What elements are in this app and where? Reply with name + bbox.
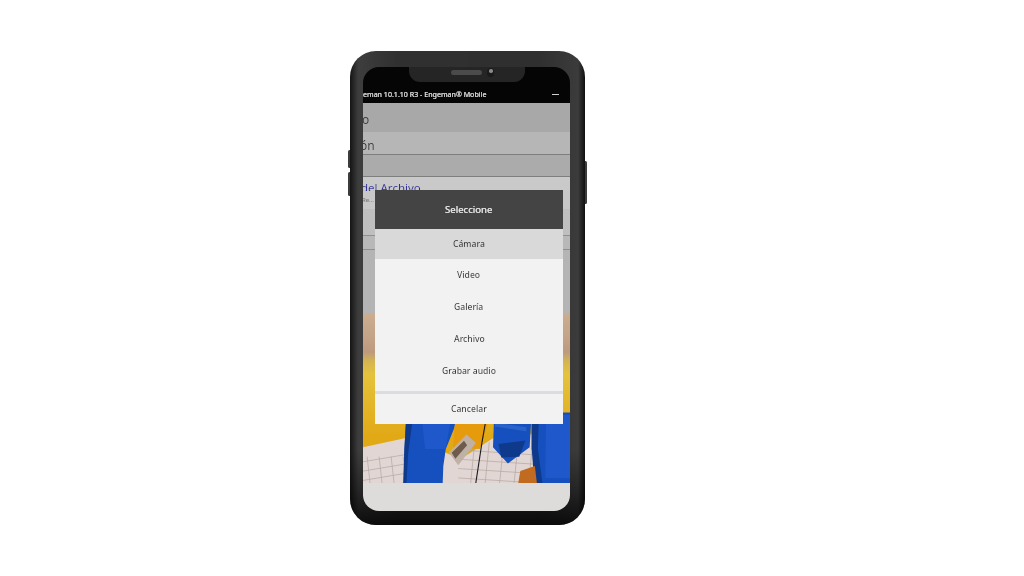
staticText: Re...	[363, 196, 374, 204]
staticText: Cancelar	[451, 403, 487, 415]
button[interactable]: Grabar audio	[375, 355, 563, 387]
staticText: o	[363, 111, 370, 127]
button[interactable]: Minimizar	[546, 87, 564, 103]
button[interactable]: del Archivo	[363, 177, 570, 191]
button[interactable]: Archivo	[375, 323, 563, 355]
staticText: Archivo	[454, 333, 485, 345]
staticText: Cámara	[453, 238, 485, 250]
staticText: Video	[457, 269, 481, 281]
staticText: Seleccione	[445, 203, 493, 216]
staticText: del Archivo	[363, 180, 421, 194]
staticText: ón	[363, 137, 375, 153]
button[interactable]: Cámara	[375, 229, 563, 259]
button[interactable]: Cancelar	[375, 394, 563, 424]
button[interactable]: Video	[375, 259, 563, 291]
staticText: eman 10.1.10 R3 - Engeman® Mobile	[363, 89, 487, 99]
staticText: Grabar audio	[442, 365, 496, 377]
staticText: Galería	[454, 301, 484, 313]
button[interactable]: Galería	[375, 291, 563, 323]
